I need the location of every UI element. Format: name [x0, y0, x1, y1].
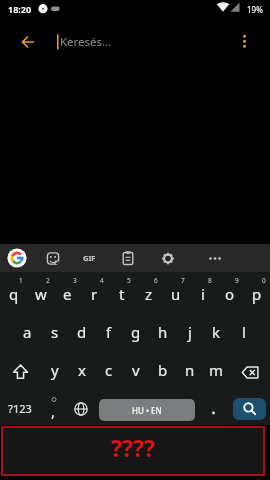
staticText: z: [145, 284, 153, 304]
button[interactable]: e: [54, 272, 81, 310]
button[interactable]: [233, 398, 266, 420]
button[interactable]: c: [95, 348, 122, 386]
staticText: w: [35, 284, 47, 304]
button[interactable]: o: [216, 272, 243, 310]
button[interactable]: f: [95, 310, 122, 348]
button[interactable]: k: [203, 310, 230, 348]
staticText: 18:20: [8, 3, 32, 15]
button[interactable]: b: [149, 348, 176, 386]
button[interactable]: w: [27, 272, 54, 310]
button[interactable]: [0, 244, 34, 272]
button[interactable]: j: [176, 310, 203, 348]
button[interactable]: z: [135, 272, 162, 310]
button[interactable]: q: [0, 272, 27, 310]
button[interactable]: l: [230, 310, 257, 348]
staticText: b: [158, 360, 168, 380]
staticText: n: [185, 360, 195, 380]
staticText: ?123: [8, 401, 32, 416]
button[interactable]: GIF: [72, 244, 106, 272]
staticText: ,: [51, 401, 56, 421]
staticText: 9: [235, 276, 239, 285]
staticText: q: [9, 284, 19, 304]
button[interactable]: [198, 244, 232, 272]
staticText: y: [51, 360, 59, 380]
staticText: 5: [127, 276, 131, 285]
button[interactable]: i: [189, 272, 216, 310]
button[interactable]: y: [41, 348, 68, 386]
staticText: 3: [73, 276, 77, 285]
button[interactable]: [36, 244, 70, 272]
button[interactable]: [200, 386, 227, 424]
staticText: 4: [100, 276, 104, 285]
staticText: i: [201, 284, 205, 304]
staticText: l: [242, 322, 246, 342]
button[interactable]: v: [122, 348, 149, 386]
staticText: o: [225, 284, 235, 304]
staticText: 0: [262, 276, 266, 285]
staticText: p: [252, 284, 262, 304]
button[interactable]: u: [162, 272, 189, 310]
staticText: 2: [46, 276, 50, 285]
staticText: 8: [208, 276, 212, 285]
button[interactable]: [111, 244, 145, 272]
staticText: HU • EN: [132, 405, 162, 416]
staticText: x: [78, 360, 86, 380]
button[interactable]: d: [68, 310, 95, 348]
button[interactable]: [151, 244, 185, 272]
staticText: k: [212, 322, 221, 342]
button[interactable]: ?123: [0, 386, 40, 424]
staticText: 6: [154, 276, 158, 285]
staticText: f: [106, 322, 112, 342]
button[interactable]: [67, 386, 94, 424]
button[interactable]: m: [203, 348, 230, 386]
button[interactable]: x: [68, 348, 95, 386]
button[interactable]: h: [149, 310, 176, 348]
button[interactable]: [230, 26, 260, 58]
button[interactable]: HU • EN: [99, 399, 195, 421]
staticText: 19%: [247, 4, 263, 15]
staticText: u: [171, 284, 181, 304]
staticText: r: [91, 284, 98, 304]
staticText: t: [119, 284, 125, 304]
button[interactable]: g: [122, 310, 149, 348]
staticText: d: [77, 322, 87, 342]
staticText: h: [158, 322, 168, 342]
button[interactable]: a: [14, 310, 41, 348]
button[interactable]: [230, 348, 270, 386]
button[interactable]: ,: [40, 386, 67, 424]
staticText: ????: [111, 432, 155, 463]
button[interactable]: t: [108, 272, 135, 310]
button[interactable]: s: [41, 310, 68, 348]
button[interactable]: r: [81, 272, 108, 310]
staticText: v: [132, 360, 140, 380]
staticText: GIF: [83, 253, 96, 263]
staticText: a: [23, 322, 32, 342]
staticText: j: [188, 322, 192, 342]
button[interactable]: ????: [1, 426, 265, 476]
button[interactable]: [0, 348, 41, 386]
button[interactable]: [12, 26, 44, 58]
button[interactable]: Keresés...: [52, 28, 232, 56]
staticText: m: [209, 360, 224, 380]
staticText: c: [105, 360, 113, 380]
button[interactable]: n: [176, 348, 203, 386]
staticText: 7: [181, 276, 185, 285]
staticText: s: [51, 322, 59, 342]
button[interactable]: p: [243, 272, 270, 310]
staticText: 1: [19, 276, 23, 285]
staticText: e: [63, 284, 72, 304]
staticText: Keresés...: [60, 34, 112, 50]
staticText: g: [131, 322, 141, 342]
